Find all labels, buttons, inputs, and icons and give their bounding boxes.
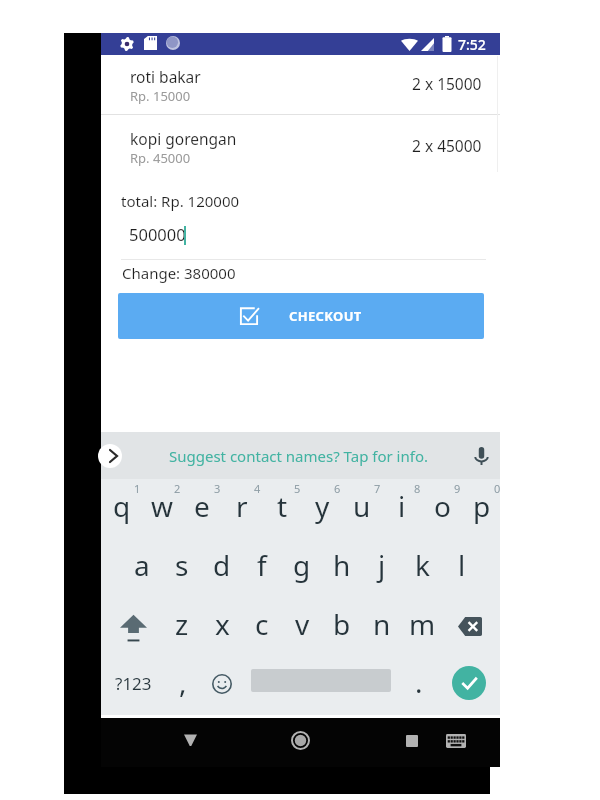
button[interactable]: x bbox=[202, 595, 242, 653]
button[interactable]: w bbox=[142, 477, 182, 535]
staticText: . bbox=[415, 663, 423, 701]
button[interactable]: h bbox=[322, 536, 362, 594]
button[interactable]: i bbox=[382, 477, 422, 535]
button[interactable]: n bbox=[362, 595, 402, 653]
staticText: k bbox=[415, 546, 430, 584]
staticText: f bbox=[257, 546, 267, 584]
staticText: 6 bbox=[334, 481, 341, 496]
staticText: 7:52 bbox=[458, 35, 486, 54]
staticText: 500000 bbox=[129, 223, 186, 245]
button[interactable]: kopi gorengan bbox=[101, 117, 500, 176]
staticText: total: Rp. 120000 bbox=[121, 191, 240, 211]
button[interactable]: c bbox=[242, 595, 282, 653]
button[interactable]: b bbox=[322, 595, 362, 653]
button[interactable]: q bbox=[102, 477, 142, 535]
staticText: h bbox=[333, 546, 351, 584]
staticText: 7 bbox=[374, 481, 381, 496]
button[interactable]: d bbox=[202, 536, 242, 594]
staticText: i bbox=[398, 487, 406, 525]
staticText: m bbox=[409, 605, 436, 643]
button[interactable]: k bbox=[402, 536, 442, 594]
staticText: j bbox=[378, 546, 386, 584]
button[interactable]: . bbox=[399, 656, 439, 708]
button[interactable]: Emoji bbox=[201, 658, 243, 710]
staticText: ?123 bbox=[115, 672, 152, 695]
staticText: p bbox=[473, 487, 491, 525]
staticText: o bbox=[434, 487, 451, 525]
button[interactable]: r bbox=[222, 477, 262, 535]
staticText: s bbox=[175, 546, 189, 584]
staticText: t bbox=[277, 487, 288, 525]
button[interactable]: s bbox=[162, 536, 202, 594]
staticText: 8 bbox=[414, 481, 421, 496]
button[interactable]: z bbox=[162, 595, 202, 653]
staticText: 1 bbox=[134, 481, 141, 496]
staticText: g bbox=[293, 546, 311, 584]
staticText: 3 bbox=[214, 481, 221, 496]
staticText: Rp. 15000 bbox=[130, 87, 191, 105]
button[interactable]: y bbox=[302, 477, 342, 535]
staticText: Change: 380000 bbox=[122, 263, 236, 283]
button[interactable]: , bbox=[163, 656, 203, 708]
staticText: 2 x 15000 bbox=[412, 73, 482, 94]
staticText: a bbox=[134, 546, 150, 584]
staticText: l bbox=[458, 546, 466, 584]
button[interactable]: Recent apps bbox=[392, 721, 431, 760]
staticText: d bbox=[213, 546, 231, 584]
staticText: roti bakar bbox=[130, 66, 201, 87]
button[interactable]: ?123 bbox=[104, 657, 162, 709]
button[interactable]: m bbox=[402, 595, 442, 653]
staticText: 9 bbox=[454, 481, 461, 496]
button[interactable]: Back bbox=[171, 721, 210, 760]
button[interactable]: f bbox=[242, 536, 282, 594]
button[interactable]: Switch keyboard bbox=[436, 721, 475, 760]
button[interactable]: g bbox=[282, 536, 322, 594]
staticText: 2 x 45000 bbox=[412, 135, 482, 156]
button[interactable]: CHECKOUT bbox=[118, 293, 484, 339]
staticText: u bbox=[353, 487, 371, 525]
staticText: Suggest contact names? Tap for info. bbox=[169, 446, 428, 466]
button[interactable]: t bbox=[262, 477, 302, 535]
staticText: y bbox=[315, 487, 330, 525]
staticText: z bbox=[175, 605, 189, 643]
button[interactable]: Expand suggestions bbox=[98, 444, 122, 468]
button[interactable]: roti bakar bbox=[101, 55, 500, 114]
staticText: e bbox=[194, 487, 210, 525]
staticText: c bbox=[255, 605, 269, 643]
button[interactable]: u bbox=[342, 477, 382, 535]
staticText: n bbox=[373, 605, 391, 643]
button[interactable]: Voice input bbox=[471, 445, 492, 466]
button[interactable]: Backspace bbox=[449, 595, 491, 653]
button[interactable]: Enter bbox=[452, 666, 486, 700]
staticText: 2 bbox=[174, 481, 181, 496]
staticText: , bbox=[179, 663, 187, 701]
button[interactable]: j bbox=[362, 536, 402, 594]
button[interactable]: a bbox=[122, 536, 162, 594]
staticText: b bbox=[333, 605, 351, 643]
staticText: CHECKOUT bbox=[289, 307, 362, 325]
button[interactable]: e bbox=[182, 477, 222, 535]
button[interactable]: p bbox=[462, 477, 502, 535]
button[interactable]: v bbox=[282, 595, 322, 653]
button[interactable]: l bbox=[442, 536, 482, 594]
button[interactable]: Home bbox=[281, 721, 320, 760]
staticText: q bbox=[113, 487, 131, 525]
staticText: 5 bbox=[294, 481, 301, 496]
staticText: r bbox=[236, 487, 248, 525]
staticText: v bbox=[295, 605, 310, 643]
button[interactable]: o bbox=[422, 477, 462, 535]
staticText: x bbox=[215, 605, 230, 643]
staticText: w bbox=[151, 487, 174, 525]
staticText: Rp. 45000 bbox=[130, 149, 191, 167]
staticText: 0 bbox=[494, 481, 501, 496]
staticText: 4 bbox=[254, 481, 261, 496]
button[interactable]: Shift bbox=[112, 595, 154, 653]
staticText: kopi gorengan bbox=[130, 128, 237, 149]
